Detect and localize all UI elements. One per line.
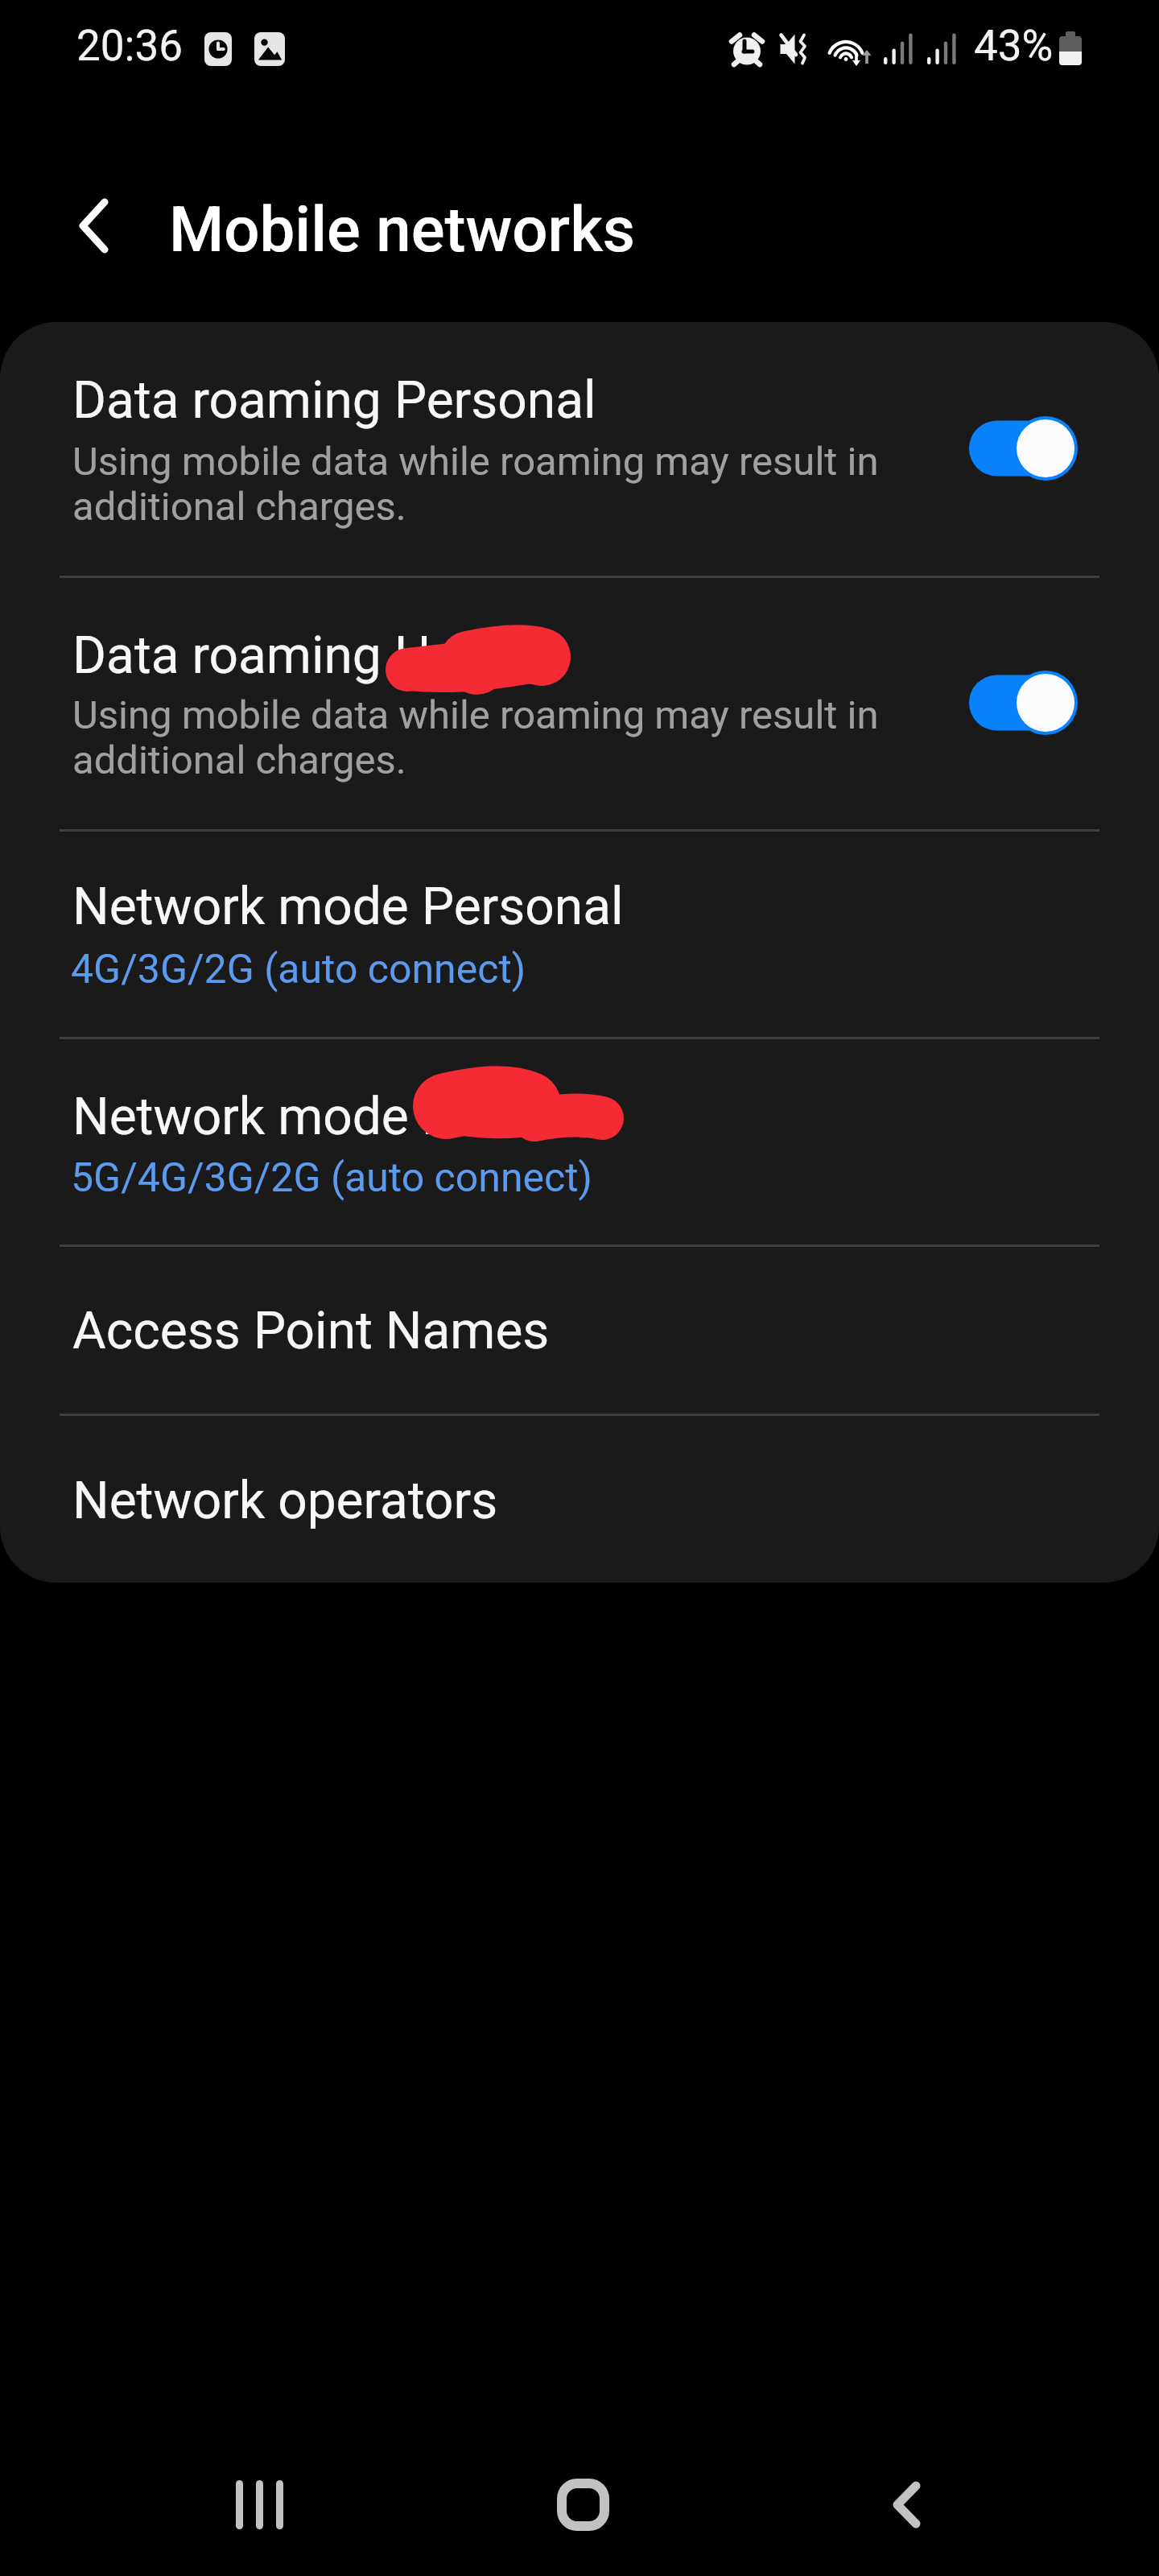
- button[interactable]: Access Point Names: [0, 1247, 1159, 1414]
- staticText: Network operators: [72, 1471, 498, 1531]
- staticText: Data roaming H: [72, 625, 431, 686]
- staticText: 4G/3G/2G (auto connect): [71, 946, 526, 993]
- button[interactable]: Data roaming toggle: [969, 675, 1082, 731]
- button[interactable]: Navigate up: [48, 180, 138, 270]
- staticText: Using mobile data while roaming may resu…: [72, 692, 909, 783]
- button[interactable]: Data roaming H: [0, 578, 1159, 829]
- button[interactable]: Network mode H: [0, 1039, 1159, 1245]
- button[interactable]: Recent apps: [188, 2452, 330, 2557]
- staticText: Mobile networks: [169, 193, 635, 266]
- staticText: Network mode Personal: [72, 877, 624, 937]
- button[interactable]: Data roaming toggle: [969, 420, 1082, 477]
- button[interactable]: Home: [512, 2452, 654, 2557]
- staticText: Network mode H: [72, 1087, 459, 1147]
- staticText: 43%: [974, 21, 1054, 71]
- staticText: Data roaming Personal: [72, 370, 596, 431]
- button[interactable]: Back: [835, 2439, 977, 2560]
- button[interactable]: Network operators: [0, 1416, 1159, 1583]
- button[interactable]: Network mode Personal: [0, 832, 1159, 1037]
- staticText: 20:36: [76, 21, 183, 71]
- staticText: 5G/4G/3G/2G (auto connect): [71, 1154, 592, 1202]
- staticText: Access Point Names: [72, 1301, 550, 1361]
- staticText: Using mobile data while roaming may resu…: [72, 439, 909, 530]
- button[interactable]: Data roaming Personal: [0, 322, 1159, 576]
